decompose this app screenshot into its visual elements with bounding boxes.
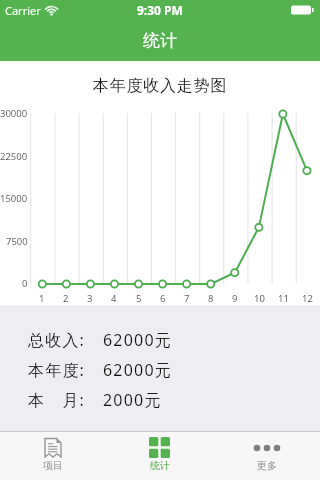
button[interactable]: 统计 — [106, 431, 213, 480]
button[interactable]: 项目 — [0, 431, 106, 480]
staticText: 项目 — [43, 459, 63, 472]
staticText: 11 — [278, 292, 289, 305]
staticText: 8 — [208, 292, 214, 305]
staticText: 本 月: — [28, 389, 86, 411]
staticText: 本年度收入走势图 — [0, 76, 320, 96]
staticText: Carrier — [5, 3, 41, 18]
staticText: 2 — [63, 292, 69, 305]
staticText: 3 — [87, 292, 93, 305]
staticText: 9 — [232, 292, 238, 305]
staticText: 1 — [39, 292, 45, 305]
staticText: 0 — [22, 277, 28, 290]
button[interactable]: 更多 — [213, 431, 320, 480]
staticText: 7500 — [6, 235, 28, 248]
staticText: 9:30 PM — [137, 2, 183, 18]
staticText: 2000元 — [103, 389, 162, 411]
staticText: 10 — [254, 292, 265, 305]
staticText: 22500 — [0, 150, 28, 163]
staticText: 4 — [111, 292, 117, 305]
staticText: 12 — [302, 292, 313, 305]
staticText: 统计 — [143, 30, 177, 51]
staticText: 6 — [160, 292, 166, 305]
staticText: 30000 — [0, 107, 28, 120]
staticText: 总收入: — [28, 329, 86, 351]
staticText: 更多 — [257, 459, 277, 472]
staticText: 62000元 — [103, 359, 172, 381]
staticText: 本年度: — [28, 359, 86, 381]
staticText: 62000元 — [103, 329, 172, 351]
staticText: 15000 — [0, 192, 28, 205]
staticText: 5 — [136, 292, 142, 305]
staticText: 7 — [184, 292, 190, 305]
staticText: 统计 — [150, 459, 170, 472]
